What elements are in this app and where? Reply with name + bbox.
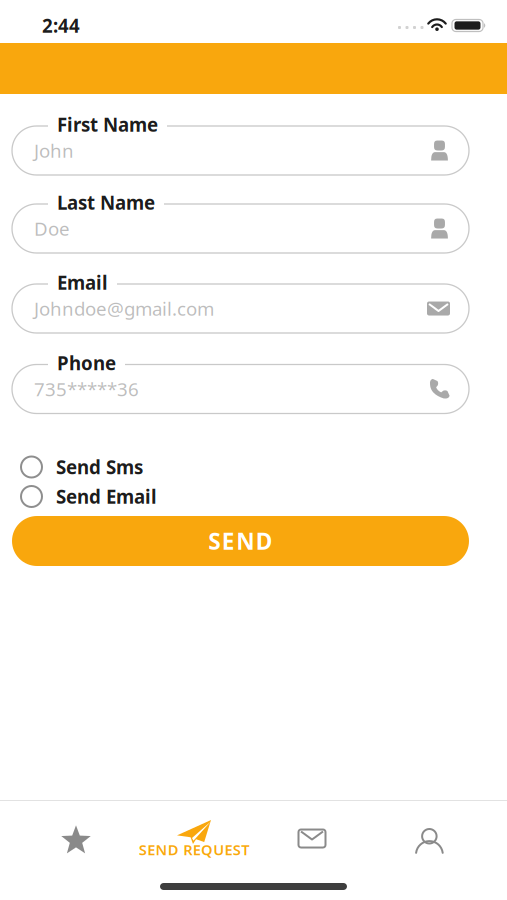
button[interactable]: SEND <box>12 516 469 566</box>
staticText: Johndoe@gmail.com <box>34 296 214 321</box>
staticText: Send Sms <box>56 455 143 479</box>
button[interactable]: First Name <box>12 116 469 175</box>
button[interactable]: Email <box>12 274 469 333</box>
staticText: First Name <box>57 112 158 137</box>
staticText: SEND REQUEST <box>139 840 249 859</box>
button[interactable]: Profile <box>384 810 474 866</box>
staticText: Doe <box>34 216 70 241</box>
staticText: 2:44 <box>42 13 80 38</box>
button[interactable]: Messages <box>267 810 357 866</box>
button[interactable]: Last Name <box>12 194 469 253</box>
button[interactable]: Phone <box>12 354 469 413</box>
staticText: Last Name <box>57 190 155 215</box>
staticText: 735*****36 <box>34 377 139 401</box>
staticText: John <box>34 138 74 163</box>
staticText: Email <box>57 270 108 295</box>
staticText: Send Email <box>56 484 157 509</box>
staticText: SEND <box>208 526 273 556</box>
button[interactable]: Send Email <box>21 483 261 509</box>
staticText: Phone <box>57 350 116 375</box>
button[interactable]: Favorites <box>26 812 126 868</box>
button[interactable]: Send Sms <box>21 454 261 480</box>
button[interactable]: SEND REQUEST <box>124 817 264 863</box>
